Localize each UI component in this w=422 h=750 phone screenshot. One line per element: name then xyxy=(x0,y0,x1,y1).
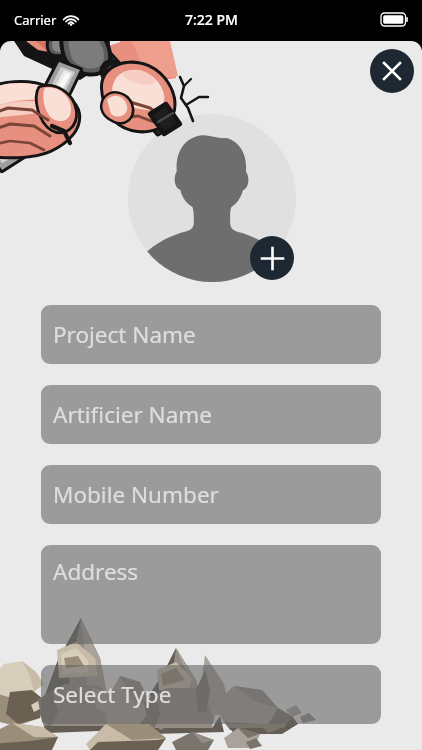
staticText: 7:22 PM xyxy=(185,10,238,29)
staticText: Artificier Name xyxy=(53,399,213,430)
staticText: Mobile Number xyxy=(53,479,219,510)
button[interactable]: Select Type xyxy=(41,665,381,724)
staticText: Address xyxy=(53,556,139,587)
staticText: Project Name xyxy=(53,319,196,350)
button[interactable]: Project Name xyxy=(41,305,381,364)
staticText: Carrier xyxy=(14,11,57,29)
staticText: Select Type xyxy=(53,679,172,710)
button[interactable]: Address xyxy=(41,545,381,644)
button[interactable]: Close xyxy=(370,49,414,93)
button[interactable]: Add photo xyxy=(250,236,294,280)
button[interactable]: Mobile Number xyxy=(41,465,381,524)
button[interactable]: Artificier Name xyxy=(41,385,381,444)
